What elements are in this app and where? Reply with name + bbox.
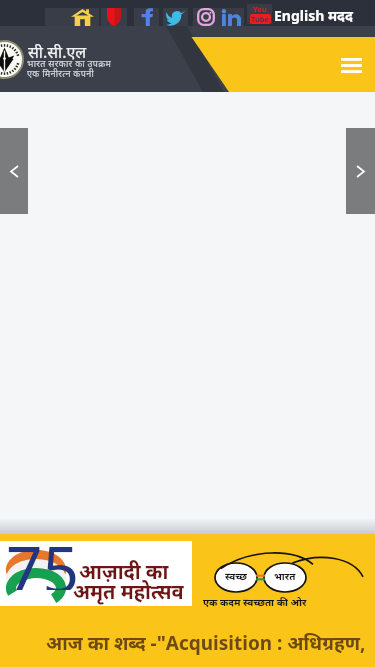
button[interactable]: YouTube <box>247 4 272 24</box>
button[interactable]: English मदद <box>274 4 353 26</box>
staticText: English मदद <box>274 6 353 25</box>
button[interactable]: आज का शब्द -"Acquisition : अधिग्रहण, <box>46 630 366 656</box>
staticText: आज का शब्द -"Acquisition : अधिग्रहण, <box>46 630 366 656</box>
button[interactable]: Previous slide <box>0 128 28 214</box>
button[interactable]: Swachh Bharat <box>195 540 375 612</box>
staticText: आज़ादी का <box>79 558 169 585</box>
staticText: सी.सी.एल <box>28 41 87 63</box>
staticText: एक कदम स्वच्छता की ओर <box>203 595 307 609</box>
staticText: भारत <box>274 569 296 583</box>
staticText: स्वच्छ <box>225 569 247 583</box>
button[interactable]: LinkedIn <box>218 8 244 26</box>
staticText: Tube <box>251 14 270 24</box>
button[interactable]: Home <box>45 8 99 26</box>
staticText: 75 <box>6 525 80 590</box>
staticText: You <box>253 4 267 14</box>
button[interactable]: Instagram <box>193 8 219 26</box>
button[interactable]: Security <box>101 8 127 26</box>
button[interactable]: Open menu <box>334 50 368 80</box>
staticText: भारत सरकार का उपक्रम <box>27 57 112 69</box>
button[interactable]: Next slide <box>346 128 375 214</box>
button[interactable]: Azadi Ka Amrit Mahotsav <box>0 541 192 606</box>
staticText: एक मिनीरत्न कंपनी <box>27 67 95 79</box>
button[interactable]: Twitter <box>163 8 188 26</box>
staticText: अमृत महोत्सव <box>73 578 184 605</box>
button[interactable]: Facebook <box>134 8 159 26</box>
